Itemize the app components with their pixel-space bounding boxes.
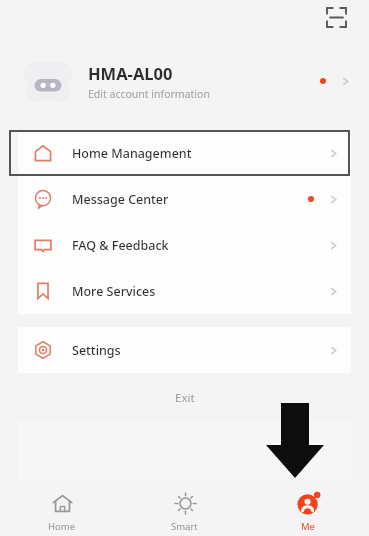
button[interactable]: Exit (0, 387, 369, 409)
staticText: Edit account information (88, 87, 210, 101)
button[interactable]: HMA-AL00 (0, 50, 369, 112)
staticText: Exit (175, 390, 195, 406)
button[interactable]: Home (0, 481, 123, 536)
staticText: Me (301, 520, 315, 533)
button[interactable]: Settings (18, 327, 351, 373)
button[interactable]: More Services (18, 268, 351, 314)
button[interactable]: FAQ & Feedback (18, 222, 351, 268)
button[interactable]: Me (246, 481, 369, 536)
button[interactable]: Scan (323, 4, 349, 30)
staticText: More Services (72, 283, 156, 300)
staticText: Settings (72, 342, 121, 359)
staticText: Home Management (72, 145, 192, 162)
staticText: Smart (171, 520, 198, 533)
button[interactable]: Home Management (18, 130, 351, 176)
button[interactable]: Message Center (18, 176, 351, 222)
staticText: HMA-AL00 (88, 62, 173, 84)
staticText: Message Center (72, 191, 169, 208)
button[interactable]: Smart (123, 481, 246, 536)
staticText: Home (48, 520, 76, 533)
staticText: FAQ & Feedback (72, 237, 169, 254)
